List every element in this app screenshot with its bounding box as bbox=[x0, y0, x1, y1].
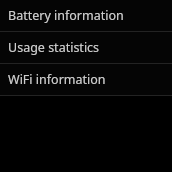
staticText: Battery information bbox=[8, 7, 124, 24]
staticText: WiFi information bbox=[8, 71, 106, 88]
button[interactable]: Battery information bbox=[0, 0, 172, 31]
staticText: Usage statistics bbox=[8, 39, 100, 56]
button[interactable]: Usage statistics bbox=[0, 32, 172, 63]
button[interactable]: WiFi information bbox=[0, 64, 172, 95]
